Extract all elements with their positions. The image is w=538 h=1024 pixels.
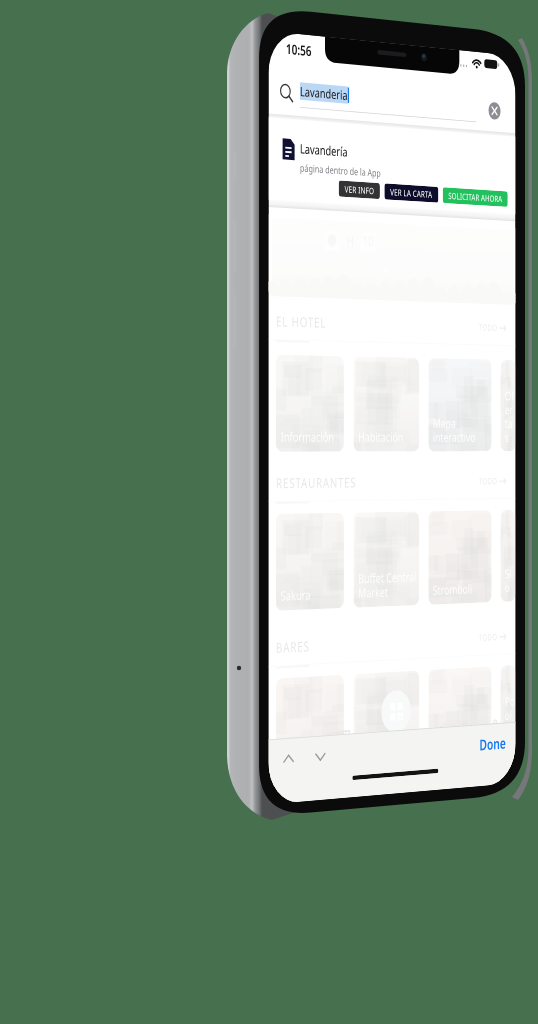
button[interactable]: Terrace Bar <box>247 707 350 813</box>
button[interactable]: Ofertas <box>365 353 390 459</box>
staticText: VER LA CARTA <box>186 160 254 174</box>
staticText: Ambiente <box>253 792 294 804</box>
staticText: Ofertas <box>372 385 390 452</box>
button[interactable]: VER LA CARTA <box>177 158 263 176</box>
button[interactable]: Sio <box>365 527 390 633</box>
button[interactable]: Buffet Central Market <box>129 527 232 633</box>
button[interactable]: SOLICITAR AHORA <box>270 158 377 176</box>
button[interactable]: Mapa interactivo <box>247 353 350 459</box>
button[interactable]: Ambiente <box>234 750 312 806</box>
button[interactable]: TODO <box>329 666 376 680</box>
staticText: Done <box>330 785 374 808</box>
button[interactable]: Habitación <box>129 353 232 459</box>
button[interactable]: Stromboli <box>247 527 350 633</box>
button[interactable]: Pool Side <box>365 707 390 813</box>
staticText: Compartir <box>329 792 373 804</box>
staticText: Pool Side <box>372 739 390 806</box>
staticText: Buffet Central Market <box>136 591 228 626</box>
staticText: SOLICITAR AHORA <box>279 160 368 174</box>
staticText: Stromboli <box>254 607 319 626</box>
staticText: TODO <box>329 486 360 500</box>
staticText: Mapa interactivo <box>254 417 324 452</box>
button[interactable]: Lobby Coffee <box>129 707 232 813</box>
button[interactable]: Compartir <box>312 750 390 806</box>
button[interactable]: Done <box>314 777 390 816</box>
button[interactable]: Clear search <box>337 48 373 84</box>
staticText: Sio <box>372 591 390 626</box>
staticText: TODO <box>329 666 360 680</box>
staticText: Terrace Bar <box>254 787 329 806</box>
